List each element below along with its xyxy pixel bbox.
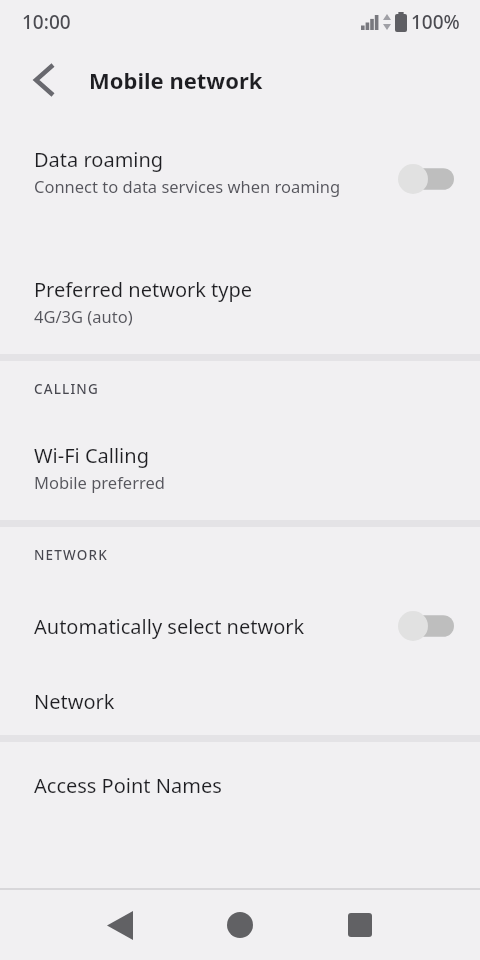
staticText: 100% (411, 9, 460, 35)
staticText: 10:00 (22, 9, 71, 35)
staticText: CALLING (34, 380, 99, 398)
button[interactable]: Home (200, 890, 280, 960)
button[interactable]: Data roaming toggle, off (398, 164, 454, 194)
button[interactable]: Automatically select network (0, 598, 480, 654)
button[interactable]: Access Point Names (0, 758, 480, 812)
staticText: NETWORK (34, 546, 108, 564)
button[interactable]: Automatically select network toggle, off (398, 611, 454, 641)
button[interactable]: Back (20, 56, 68, 104)
staticText: Wi-Fi Calling (34, 442, 149, 469)
button[interactable]: Preferred network type (0, 268, 480, 342)
button[interactable]: Wi-Fi Calling (0, 434, 480, 508)
staticText: Network (34, 688, 115, 715)
staticText: Access Point Names (34, 772, 222, 799)
staticText: Preferred network type (34, 276, 253, 303)
button[interactable]: Data roaming (0, 138, 480, 234)
staticText: 4G/3G (auto) (34, 305, 133, 327)
staticText: Automatically select network (34, 613, 305, 640)
button[interactable]: Back (80, 890, 160, 960)
button[interactable]: Network (0, 674, 480, 728)
staticText: Mobile network (89, 65, 263, 95)
button[interactable]: Recents (320, 890, 400, 960)
staticText: Mobile preferred (34, 471, 165, 493)
staticText: Connect to data services when roaming (34, 175, 341, 197)
staticText: Data roaming (34, 146, 164, 173)
